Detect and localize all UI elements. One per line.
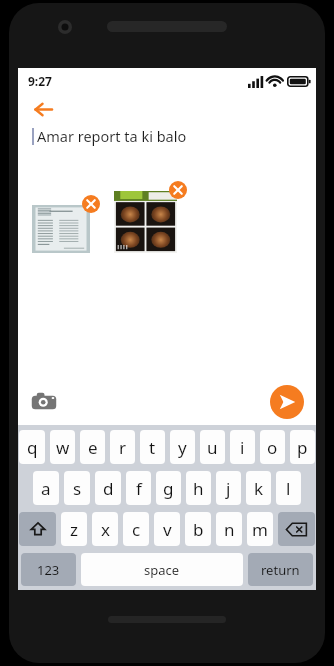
button[interactable]: 123 [21,553,76,586]
staticText: v [163,518,172,541]
staticText: h [193,477,204,500]
button[interactable]: a [33,471,59,505]
button[interactable]: t [140,430,165,464]
staticText: r [119,436,127,459]
button[interactable]: i [230,430,255,464]
staticText: d [103,477,114,500]
button[interactable]: h [186,471,211,505]
button[interactable]: v [154,512,180,546]
staticText: y [178,436,187,459]
staticText: l [286,477,291,500]
staticText: u [207,436,218,459]
staticText: o [267,436,278,459]
button[interactable]: Back [26,94,60,124]
staticText: m [252,518,268,541]
button[interactable]: Backspace [278,512,315,546]
staticText: Amar report ta ki balo [37,126,187,146]
staticText: b [193,518,204,541]
button[interactable] [114,191,177,253]
staticText: t [149,436,156,459]
staticText: x [101,518,110,541]
button[interactable]: j [216,471,241,505]
button[interactable]: w [50,430,75,464]
button[interactable]: f [126,471,151,505]
button[interactable]: s [64,471,90,505]
staticText: 123 [37,561,60,579]
button[interactable]: o [260,430,285,464]
button[interactable]: return [248,553,313,586]
staticText: s [73,477,82,500]
button[interactable]: z [61,512,87,546]
button[interactable]: Send [270,385,304,419]
staticText: c [132,518,141,541]
staticText: j [226,477,231,500]
staticText: k [254,477,264,500]
button[interactable]: e [80,430,105,464]
button[interactable]: x [92,512,118,546]
button[interactable]: m [247,512,273,546]
staticText: g [163,477,174,500]
staticText: space [144,561,180,579]
button[interactable]: y [170,430,195,464]
staticText: z [70,518,78,541]
button[interactable]: l [276,471,301,505]
button[interactable]: Remove attachment [169,181,187,199]
button[interactable]: b [185,512,211,546]
staticText: w [56,436,70,459]
button[interactable]: Remove attachment [82,195,100,213]
staticText: n [224,518,235,541]
button[interactable]: u [200,430,225,464]
staticText: p [297,436,308,459]
button[interactable]: k [246,471,271,505]
button[interactable]: q [19,430,45,464]
staticText: e [88,436,98,459]
staticText: a [41,477,51,500]
button[interactable]: g [156,471,181,505]
button[interactable]: p [290,430,315,464]
button[interactable]: d [95,471,121,505]
button[interactable] [32,205,90,253]
button[interactable]: Amar report ta ki balo [32,126,304,146]
staticText: return [261,561,300,579]
button[interactable]: Camera [26,384,62,420]
staticText: i [240,436,245,459]
button[interactable]: c [123,512,149,546]
button[interactable]: r [110,430,135,464]
button[interactable]: Shift [19,512,56,546]
staticText: 9:27 [28,73,52,89]
button[interactable]: n [216,512,242,546]
staticText: f [136,477,142,500]
staticText: q [27,436,38,459]
button[interactable]: space [81,553,243,586]
